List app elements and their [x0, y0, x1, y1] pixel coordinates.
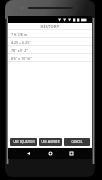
staticText: CANCEL: [71, 140, 83, 144]
button[interactable]: Recents: [66, 148, 77, 159]
button[interactable]: USE ANSWER: [39, 138, 62, 146]
staticText: 4.25 + 6.25": [11, 40, 31, 45]
button[interactable]: 7 ft 7/8 in: [8, 30, 92, 38]
button[interactable]: 4.25 + 6.25": [8, 38, 92, 46]
staticText: USE EQUATION: [13, 140, 35, 144]
staticText: 7 ft 7/8 in: [11, 32, 27, 37]
button[interactable]: USE EQUATION: [10, 138, 37, 146]
button[interactable]: 78" x 6' 2": [8, 46, 92, 54]
staticText: 78" x 6' 2": [11, 48, 28, 53]
button[interactable]: Home: [45, 148, 56, 159]
button[interactable]: 8'6" x 10'16": [8, 54, 92, 62]
button[interactable]: CANCEL: [64, 138, 90, 146]
staticText: HISTORY: [8, 24, 92, 29]
button[interactable]: Back: [23, 148, 34, 159]
staticText: USE ANSWER: [41, 140, 60, 144]
staticText: 8'6" x 10'16": [11, 56, 32, 61]
